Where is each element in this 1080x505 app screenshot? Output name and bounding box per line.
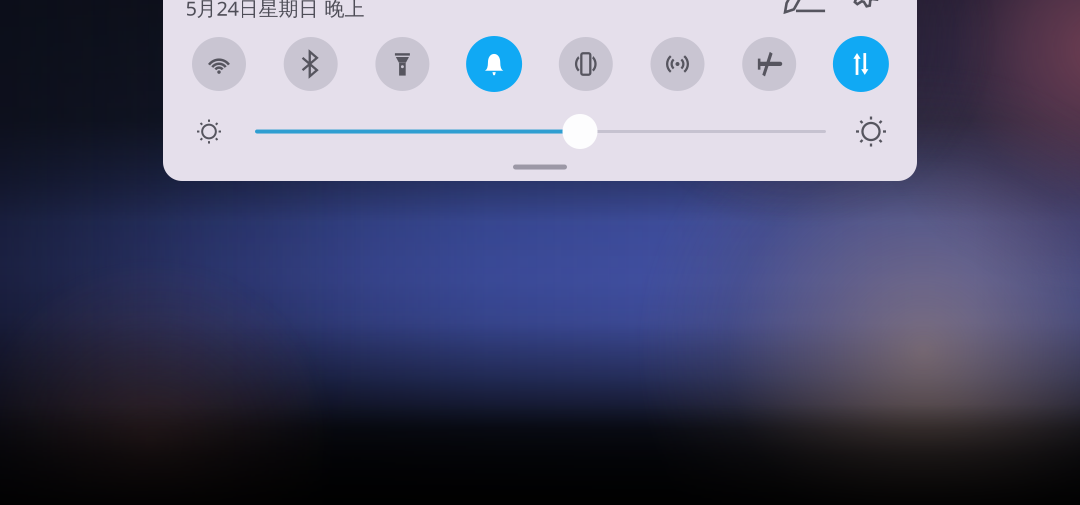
button[interactable]: Hotspot xyxy=(644,31,710,97)
button[interactable]: Edit xyxy=(777,0,817,17)
button[interactable]: Airplane mode xyxy=(736,31,802,97)
button[interactable]: Bluetooth xyxy=(278,31,344,97)
button[interactable]: Maximum brightness xyxy=(852,112,890,150)
button[interactable]: Vibrate xyxy=(553,31,619,97)
button[interactable]: Mobile data xyxy=(828,31,894,97)
button[interactable]: Wi-Fi xyxy=(186,31,252,97)
button[interactable]: Flashlight xyxy=(369,31,435,97)
button[interactable]: Settings xyxy=(846,0,884,11)
staticText: 5月24日星期日 晚上 xyxy=(185,0,364,21)
button[interactable]: Ring xyxy=(461,31,527,97)
button[interactable]: Minimum brightness xyxy=(192,114,226,148)
